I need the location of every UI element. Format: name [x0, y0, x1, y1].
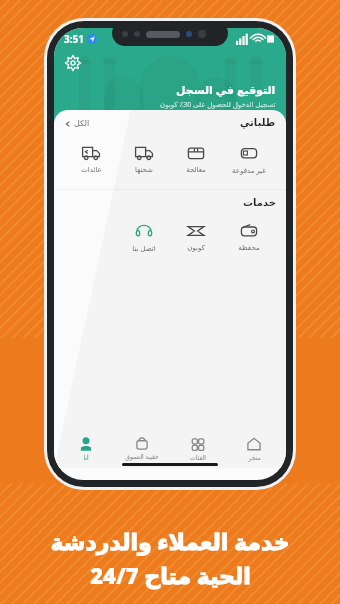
staticText: متجر — [248, 454, 261, 461]
staticText: خدمة العملاء والدردشة — [50, 526, 290, 556]
staticText: الكل — [74, 119, 90, 128]
staticText: معالجة — [186, 166, 206, 174]
staticText: طلباتي — [240, 117, 276, 129]
button[interactable]: كوبون — [172, 218, 220, 255]
button[interactable]: غير مدفوعة — [225, 140, 273, 179]
staticText: التوقيع في السجل — [176, 82, 276, 97]
staticText: شحنها — [135, 166, 153, 174]
staticText: عائدات — [81, 166, 102, 174]
button[interactable]: أنا — [58, 436, 114, 461]
staticText: حقيبة التسوق — [125, 453, 159, 461]
staticText: الحية متاح 24/7 — [90, 560, 251, 590]
staticText: محفظة — [238, 244, 260, 252]
button[interactable]: متجر — [226, 436, 282, 461]
button[interactable]: عائدات — [67, 140, 115, 177]
staticText: 3:51 — [64, 32, 84, 46]
staticText: غير مدفوعة — [232, 166, 266, 176]
button[interactable]: الفئات — [170, 436, 226, 461]
staticText: تسجيل الدخول للحصول على 30٪ كوبون — [160, 100, 276, 110]
staticText: خدمات — [243, 197, 276, 209]
button[interactable]: شحنها — [120, 140, 168, 177]
staticText: كوبون — [187, 244, 205, 252]
staticText: الفئات — [190, 454, 206, 461]
button[interactable]: اتصل بنا — [120, 218, 168, 257]
staticText: أنا — [83, 454, 89, 461]
button[interactable]: Settings — [62, 52, 84, 74]
button[interactable]: محفظة — [225, 218, 273, 255]
button[interactable]: الكل — [64, 119, 90, 128]
button[interactable]: معالجة — [172, 140, 220, 177]
staticText: اتصل بنا — [132, 244, 156, 254]
button[interactable]: حقيبة التسوق — [114, 435, 170, 461]
